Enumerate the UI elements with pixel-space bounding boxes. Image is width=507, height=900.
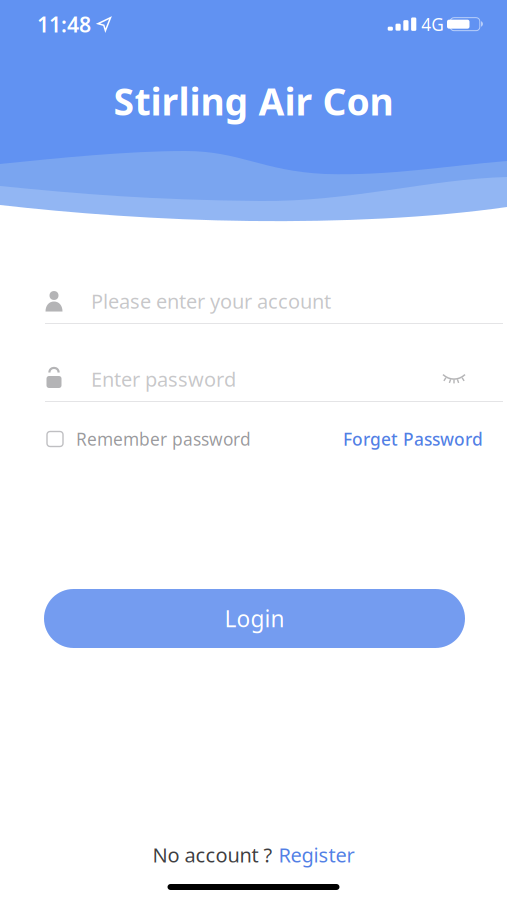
button[interactable]: Remember password xyxy=(47,427,251,450)
staticText: Remember password xyxy=(76,427,251,450)
staticText: No account ? xyxy=(152,841,272,868)
button[interactable]: Login xyxy=(44,589,465,648)
staticText: Login xyxy=(224,603,284,633)
staticText: 4G xyxy=(421,13,444,36)
staticText: Register xyxy=(278,841,354,868)
staticText: Stirling Air Con xyxy=(113,76,393,126)
staticText: Enter password xyxy=(91,366,236,392)
button[interactable]: Forget Password xyxy=(343,427,483,450)
button[interactable]: Register xyxy=(278,841,354,868)
button[interactable]: Show password xyxy=(443,373,507,385)
staticText: Please enter your account xyxy=(91,288,331,314)
staticText: Forget Password xyxy=(343,427,483,450)
staticText: 11:48 xyxy=(37,10,91,38)
